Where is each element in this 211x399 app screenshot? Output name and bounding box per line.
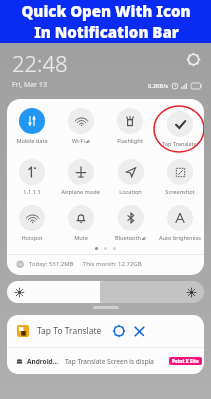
button[interactable]: Settings bbox=[185, 51, 201, 67]
staticText: 1.1.1.1 bbox=[23, 188, 41, 196]
button[interactable]: Dismiss bbox=[132, 324, 146, 338]
staticText: Auto brightness bbox=[159, 234, 201, 242]
button[interactable]: Brightness bbox=[7, 281, 204, 303]
button[interactable]: Tap Translate bbox=[155, 109, 204, 150]
button[interactable]: Location bbox=[106, 157, 155, 198]
button[interactable]: Android... bbox=[7, 348, 204, 374]
staticText: Tap To Translate bbox=[37, 325, 102, 337]
staticText: Fri, Mar 13 bbox=[12, 80, 48, 90]
staticText: Mute bbox=[74, 234, 88, 242]
button[interactable]: Screenshot bbox=[155, 157, 204, 198]
staticText: Screenshot bbox=[165, 188, 195, 196]
staticText: Quick Open With Icon bbox=[21, 1, 191, 21]
staticText: In Notification Bar bbox=[34, 22, 179, 42]
staticText: Airplane mode bbox=[61, 188, 100, 196]
staticText: Hotspot bbox=[21, 234, 43, 242]
button[interactable]: Hotspot bbox=[7, 203, 56, 244]
button[interactable]: Bluetooth bbox=[106, 203, 155, 244]
staticText: This month: 12.72GB bbox=[83, 260, 142, 268]
staticText: Tap Translate Screen is displa bbox=[65, 357, 154, 366]
staticText: Android... bbox=[27, 357, 59, 366]
button[interactable]: Airplane mode bbox=[56, 157, 105, 198]
staticText: Bluetooth bbox=[115, 234, 141, 242]
staticText: 22:48 bbox=[12, 48, 68, 78]
staticText: Tap Translate bbox=[162, 140, 197, 148]
button[interactable]: Notification settings bbox=[112, 324, 126, 338]
button[interactable]: Mute bbox=[56, 203, 105, 244]
button[interactable]: 1.1.1.1 bbox=[7, 157, 56, 198]
staticText: 0.2KB/s bbox=[148, 82, 169, 89]
staticText: Location bbox=[119, 188, 142, 196]
button[interactable]: Wi-Fi bbox=[56, 106, 105, 147]
staticText: Mobile data bbox=[16, 137, 48, 145]
button[interactable]: Auto brightness bbox=[155, 203, 204, 244]
button[interactable]: Mobile data bbox=[7, 106, 56, 147]
button[interactable]: Tap To Translate bbox=[17, 324, 194, 338]
staticText: Wi-Fi bbox=[72, 137, 85, 145]
button[interactable]: Flashlight bbox=[105, 106, 154, 147]
staticText: Today: 531.2MB bbox=[29, 260, 74, 268]
staticText: Flashlight bbox=[117, 137, 143, 145]
staticText: Point X Site bbox=[172, 358, 199, 364]
